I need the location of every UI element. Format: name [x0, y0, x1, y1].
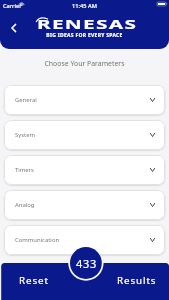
staticText: RENESAS: [37, 15, 138, 33]
button[interactable]: Timers: [4, 155, 165, 185]
staticText: Analog: [15, 201, 35, 209]
staticText: General: [15, 96, 37, 104]
staticText: Timers: [15, 166, 34, 174]
button[interactable]: Results: [103, 263, 169, 300]
button[interactable]: Back: [4, 18, 24, 38]
staticText: Carrier: [3, 2, 22, 10]
staticText: Results: [117, 274, 157, 287]
staticText: 11:45 AM: [0, 2, 169, 10]
staticText: System: [15, 131, 36, 139]
button[interactable]: Reset: [0, 263, 66, 300]
button[interactable]: Analog: [4, 190, 165, 220]
button[interactable]: General: [4, 85, 165, 115]
staticText: BIG IDEAS FOR EVERY SPACE: [0, 32, 169, 39]
staticText: 433: [76, 256, 97, 271]
staticText: Choose Your Parameters: [0, 59, 169, 68]
staticText: Reset: [19, 274, 49, 287]
button[interactable]: System: [4, 120, 165, 150]
button[interactable]: Communication: [4, 225, 165, 255]
staticText: Communication: [15, 236, 60, 244]
button[interactable]: 433: [70, 247, 102, 279]
